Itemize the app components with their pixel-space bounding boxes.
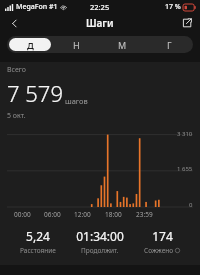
staticText: 06:00 bbox=[44, 210, 61, 219]
staticText: 3 310 bbox=[177, 130, 193, 138]
button[interactable]: Back bbox=[6, 15, 22, 31]
staticText: 23:59 bbox=[136, 210, 153, 219]
staticText: 5 окт. bbox=[7, 111, 26, 121]
staticText: 17 % bbox=[165, 2, 181, 12]
staticText: Расстояние bbox=[20, 246, 56, 255]
button[interactable]: Д bbox=[9, 38, 51, 51]
staticText: 0 bbox=[189, 201, 193, 208]
staticText: Продолжит. bbox=[81, 246, 119, 255]
staticText: шагов bbox=[65, 96, 88, 106]
staticText: М bbox=[118, 39, 127, 51]
staticText: 18:00 bbox=[105, 210, 122, 219]
button[interactable]: Share bbox=[179, 15, 195, 31]
button[interactable]: 01:34:00 bbox=[69, 228, 131, 255]
button[interactable]: М bbox=[101, 38, 144, 51]
staticText: Н bbox=[73, 39, 80, 51]
button[interactable]: 5,24 bbox=[7, 228, 69, 255]
staticText: Сожжено bbox=[144, 246, 174, 255]
button[interactable]: Н bbox=[55, 38, 97, 51]
staticText: Г bbox=[167, 39, 172, 51]
staticText: 7 579 bbox=[7, 78, 63, 108]
staticText: Д bbox=[27, 39, 34, 51]
staticText: MegaFon #1 bbox=[16, 2, 58, 12]
staticText: 1 655 bbox=[177, 165, 193, 173]
staticText: 01:34:00 bbox=[76, 228, 124, 244]
staticText: 00:00 bbox=[14, 210, 31, 219]
button[interactable]: Г bbox=[148, 38, 191, 51]
staticText: 174 bbox=[152, 228, 173, 244]
staticText: 12:00 bbox=[74, 210, 91, 219]
staticText: 22:25 bbox=[90, 2, 110, 12]
staticText: 5,24 bbox=[26, 228, 50, 244]
staticText: Всего bbox=[7, 65, 26, 75]
button[interactable]: 174 bbox=[131, 228, 193, 255]
staticText: Шаги bbox=[86, 16, 114, 30]
